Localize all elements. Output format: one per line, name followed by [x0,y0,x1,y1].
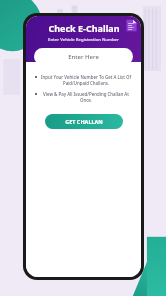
staticText: Enter Vehicle Registration Number [48,37,119,43]
button[interactable]: Enter Here [34,48,133,65]
staticText: Input Your Vehicle Number To Get A List … [40,74,132,86]
staticText: GET CHALLAN [65,118,103,125]
staticText: Enter Here [68,53,99,61]
staticText: Check E-Challan [48,22,120,34]
button[interactable]: Challan document [123,17,139,33]
staticText: View & Pay All Issued/Pending Challan At… [40,91,132,103]
button[interactable]: GET CHALLAN [45,114,123,129]
